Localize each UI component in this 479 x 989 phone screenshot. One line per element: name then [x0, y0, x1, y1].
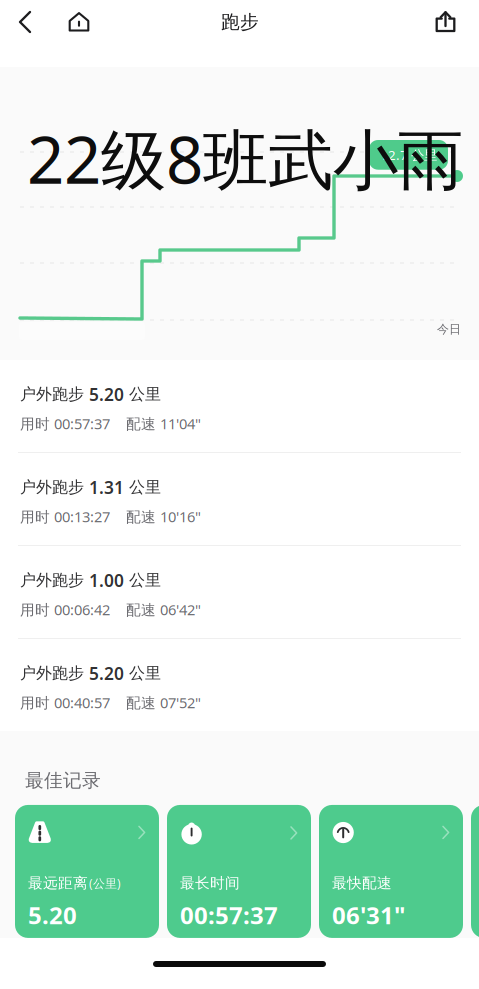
staticText: 公里 — [124, 384, 161, 404]
staticText: 用时 00:57:37 — [20, 414, 110, 433]
staticText: 户外跑步 — [20, 570, 89, 590]
staticText: 配速 11'04" — [110, 414, 201, 433]
staticText: 公里 — [124, 663, 161, 683]
staticText: 最远距离 — [28, 874, 88, 892]
staticText: 配速 06'42" — [110, 600, 201, 619]
staticText: 公里 — [124, 570, 161, 590]
staticText: 最快配速 — [332, 874, 392, 892]
button[interactable]: 户外跑步 — [0, 360, 479, 452]
button[interactable]: 返回 — [0, 0, 56, 44]
staticText: 06'31" — [332, 899, 405, 931]
staticText: 户外跑步 — [20, 663, 89, 683]
staticText: (公里) — [89, 875, 121, 891]
staticText: 最长时间 — [180, 874, 240, 892]
staticText: 今日 — [437, 322, 461, 337]
button[interactable]: 最远距离 — [15, 805, 159, 938]
staticText: 户外跑步 — [20, 384, 89, 404]
staticText: 跑步 — [221, 10, 259, 33]
staticText: 用时 00:13:27 — [20, 507, 110, 526]
staticText: 最佳记录 — [25, 769, 101, 792]
staticText: 12.7 公里 — [380, 146, 437, 164]
button[interactable]: 最多步数 — [471, 805, 479, 938]
staticText: 5.20 — [89, 383, 124, 406]
button[interactable]: 最快配速 — [319, 805, 463, 938]
staticText: 公里 — [124, 477, 161, 497]
button[interactable]: 户外跑步 — [0, 453, 479, 545]
staticText: 22级8班武小雨 — [27, 115, 463, 202]
staticText: 1.00 — [89, 569, 124, 592]
staticText: 用时 00:06:42 — [20, 600, 110, 619]
button[interactable]: 首页 — [56, 0, 102, 44]
staticText: 00:57:37 — [180, 899, 278, 931]
button[interactable]: 户外跑步 — [0, 546, 479, 638]
staticText: 用时 00:40:57 — [20, 693, 110, 712]
staticText: 配速 10'16" — [110, 507, 201, 526]
staticText: 配速 07'52" — [110, 693, 201, 712]
button[interactable]: 最长时间 — [167, 805, 311, 938]
staticText: 户外跑步 — [20, 477, 89, 497]
button[interactable]: 分享 — [422, 0, 469, 44]
staticText: 1.31 — [89, 476, 124, 499]
staticText: 5.20 — [28, 899, 77, 931]
button[interactable]: 户外跑步 — [0, 639, 479, 731]
staticText: 5.20 — [89, 662, 124, 685]
